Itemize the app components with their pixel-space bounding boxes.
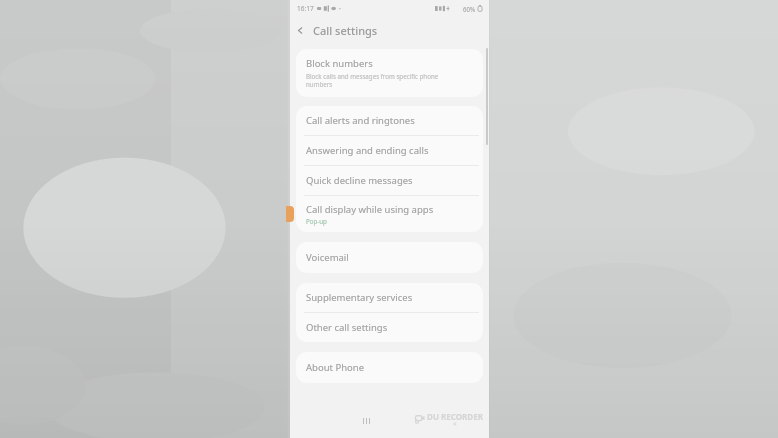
- staticText: Block calls and messages from specific p…: [306, 72, 439, 80]
- staticText: Supplementary services: [306, 291, 413, 304]
- button[interactable]: Answering and ending calls: [296, 136, 483, 165]
- button[interactable]: Recent apps: [358, 413, 374, 429]
- button[interactable]: Call display while using apps: [296, 196, 483, 232]
- staticText: Voicemail: [306, 251, 349, 264]
- staticText: Pop-up: [306, 217, 327, 225]
- button[interactable]: Back: [290, 20, 310, 40]
- button[interactable]: Block numbers: [296, 49, 483, 97]
- staticText: Call settings: [313, 23, 378, 38]
- staticText: Other call settings: [306, 321, 388, 334]
- staticText: 16:17: [297, 4, 314, 13]
- button[interactable]: About Phone: [296, 352, 483, 383]
- staticText: numbers: [306, 80, 333, 88]
- button[interactable]: Other call settings: [296, 313, 483, 342]
- button[interactable]: Supplementary services: [296, 283, 483, 312]
- button[interactable]: Call alerts and ringtones: [296, 106, 483, 135]
- staticText: Call display while using apps: [306, 203, 434, 216]
- staticText: About Phone: [306, 361, 365, 374]
- staticText: Quick decline messages: [306, 174, 413, 187]
- button[interactable]: Voicemail: [296, 242, 483, 273]
- staticText: DU RECORDER: [427, 411, 483, 422]
- staticText: Call alerts and ringtones: [306, 114, 415, 127]
- staticText: 60%: [463, 5, 476, 13]
- button[interactable]: Quick decline messages: [296, 166, 483, 195]
- staticText: Block numbers: [306, 57, 373, 70]
- staticText: Answering and ending calls: [306, 144, 429, 157]
